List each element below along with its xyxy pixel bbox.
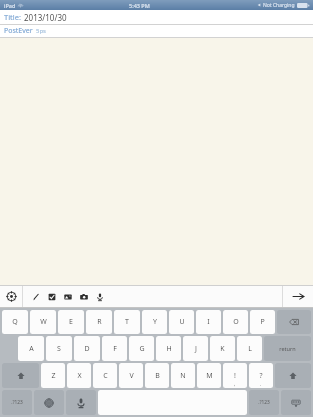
staticText: F (113, 344, 117, 354)
staticText: K (220, 344, 225, 354)
staticText: Title: (4, 12, 21, 22)
button[interactable]: D (74, 336, 100, 361)
button[interactable]: Shift (275, 363, 311, 388)
button[interactable]: A (18, 336, 44, 361)
staticText: M (206, 371, 213, 381)
staticText: return (279, 345, 296, 352)
staticText: , (234, 381, 236, 387)
button[interactable]: Dictation (66, 390, 96, 415)
button[interactable]: Shift (2, 363, 39, 388)
button[interactable]: O (223, 310, 248, 334)
button[interactable]: Y (142, 310, 167, 334)
staticText: Q (12, 317, 18, 327)
button[interactable]: Q (2, 310, 28, 334)
staticText: I (207, 317, 210, 327)
staticText: C (103, 371, 108, 381)
button[interactable]: H (156, 336, 181, 361)
staticText: .?123 (11, 399, 23, 406)
button[interactable]: Title: (0, 10, 313, 24)
button[interactable]: C (93, 363, 117, 388)
staticText: 5:43 PM (129, 2, 150, 9)
button[interactable]: Checklist (44, 286, 60, 307)
button[interactable]: F (102, 336, 127, 361)
button[interactable]: J (183, 336, 208, 361)
button[interactable]: W (30, 310, 56, 334)
staticText: U (179, 317, 185, 327)
staticText: Z (51, 371, 56, 381)
staticText: R (97, 317, 102, 327)
button[interactable]: G (129, 336, 154, 361)
button[interactable]: Send (283, 286, 313, 307)
button[interactable]: .?123 (2, 390, 32, 415)
staticText: E (69, 317, 73, 327)
button[interactable]: PostEver (0, 25, 313, 37)
button[interactable]: .?123 (249, 390, 279, 415)
button[interactable]: ? (249, 363, 273, 388)
staticText: . (260, 381, 262, 387)
staticText: Y (153, 317, 157, 327)
staticText: P (260, 317, 265, 327)
button[interactable]: L (237, 336, 262, 361)
staticText: V (129, 371, 134, 381)
staticText: W (40, 317, 47, 327)
staticText: 2013/10/30 (24, 12, 67, 23)
button[interactable]: ! (223, 363, 247, 388)
button[interactable]: Hide keyboard (281, 390, 311, 415)
staticText: PostEver (4, 26, 33, 36)
button[interactable]: N (171, 363, 195, 388)
button[interactable]: U (169, 310, 194, 334)
button[interactable]: Switch language (34, 390, 64, 415)
button[interactable]: M (197, 363, 221, 388)
staticText: 5ps (36, 27, 46, 35)
button[interactable]: R (86, 310, 112, 334)
staticText: ! (234, 371, 236, 381)
staticText: iPad (4, 2, 16, 9)
button[interactable]: P (250, 310, 275, 334)
staticText: L (248, 344, 252, 354)
button[interactable]: V (119, 363, 143, 388)
button[interactable]: return (264, 336, 311, 361)
staticText: J (195, 344, 197, 354)
button[interactable]: K (210, 336, 235, 361)
staticText: ? (259, 371, 263, 381)
button[interactable]: B (145, 363, 169, 388)
staticText: H (166, 344, 172, 354)
button[interactable]: Pen (28, 286, 44, 307)
staticText: X (77, 371, 82, 381)
button[interactable]: Camera (76, 286, 92, 307)
button[interactable]: Backspace (277, 310, 311, 334)
staticText: .?123 (258, 399, 270, 406)
button[interactable]: Microphone (92, 286, 108, 307)
staticText: Not Charging (263, 2, 295, 9)
button[interactable]: Settings (0, 286, 22, 307)
staticText: N (180, 371, 186, 381)
button[interactable]: S (46, 336, 72, 361)
staticText: O (233, 317, 239, 327)
button[interactable]: T (114, 310, 140, 334)
button[interactable]: I (196, 310, 221, 334)
button[interactable]: Photo (60, 286, 76, 307)
staticText: T (125, 317, 129, 327)
staticText: B (155, 371, 160, 381)
staticText: A (29, 344, 34, 354)
button[interactable]: E (58, 310, 84, 334)
staticText: G (139, 344, 145, 354)
button[interactable]: Z (41, 363, 65, 388)
staticText: S (57, 344, 61, 354)
staticText: D (84, 344, 90, 354)
button[interactable]: X (67, 363, 91, 388)
